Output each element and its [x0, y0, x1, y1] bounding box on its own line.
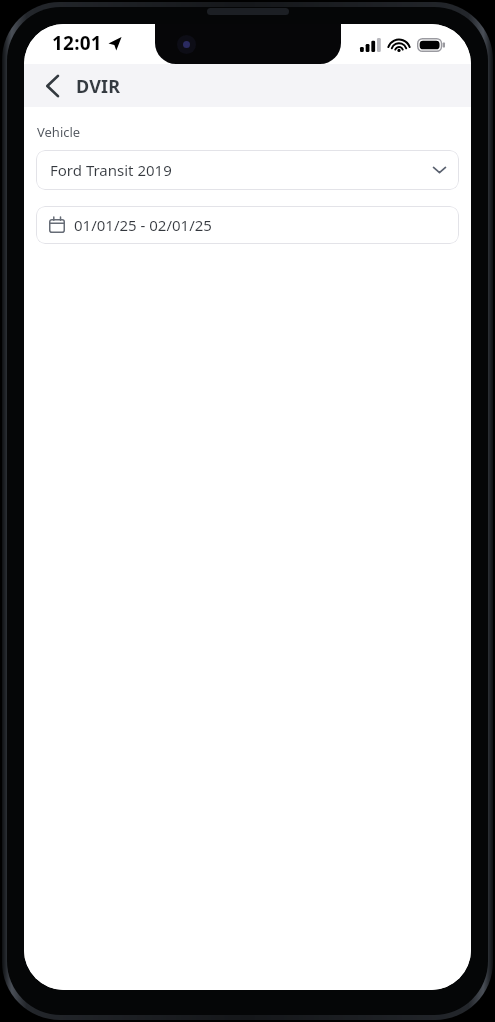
button[interactable]: Ford Transit 2019 — [36, 150, 459, 190]
staticText: Ford Transit 2019 — [50, 160, 433, 180]
staticText: DVIR — [76, 74, 121, 99]
button[interactable]: Back — [35, 66, 69, 106]
staticText: 01/01/25 - 02/01/25 — [74, 215, 212, 235]
staticText: 12:01 — [52, 30, 102, 56]
button[interactable]: 01/01/25 - 02/01/25 — [36, 206, 459, 244]
staticText: Vehicle — [37, 123, 81, 141]
